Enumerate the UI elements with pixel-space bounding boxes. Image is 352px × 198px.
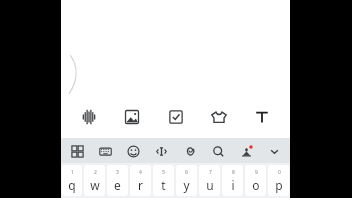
button[interactable]: Emoji (121, 139, 145, 163)
staticText: w (90, 177, 100, 193)
button[interactable]: 4 (130, 165, 151, 196)
staticText: 8 (232, 169, 235, 176)
button[interactable]: 1 (62, 165, 82, 196)
staticText: 7 (209, 169, 212, 176)
staticText: e (114, 177, 121, 193)
staticText: 0 (278, 169, 281, 176)
button[interactable]: Keyboard layout (93, 139, 117, 163)
button[interactable]: Voice message (74, 102, 104, 132)
button[interactable]: 3 (107, 165, 128, 196)
staticText: q (68, 177, 76, 193)
button[interactable]: Sticker (204, 102, 234, 132)
button[interactable]: Collapse (262, 139, 286, 163)
staticText: u (206, 177, 214, 193)
button[interactable]: 6 (176, 165, 197, 196)
button[interactable]: 9 (245, 165, 266, 196)
staticText: y (183, 177, 190, 193)
staticText: i (231, 177, 235, 193)
staticText: o (252, 177, 260, 193)
staticText: r (138, 177, 143, 193)
button[interactable]: 7 (199, 165, 220, 196)
staticText: p (275, 177, 283, 193)
staticText: 9 (255, 169, 258, 176)
button[interactable]: Apps (65, 139, 89, 163)
button[interactable]: 5 (153, 165, 174, 196)
button[interactable]: 8 (222, 165, 243, 196)
button[interactable]: Search (206, 139, 230, 163)
button[interactable]: Insert image (117, 102, 147, 132)
button[interactable]: Clipboard (178, 139, 202, 163)
button[interactable]: Settings (234, 139, 258, 163)
button[interactable]: Checklist (161, 102, 191, 132)
staticText: 3 (116, 169, 119, 176)
staticText: 5 (162, 169, 165, 176)
button[interactable]: 2 (84, 165, 105, 196)
staticText: 1 (71, 169, 74, 176)
staticText: 2 (94, 169, 97, 176)
staticText: 6 (185, 169, 188, 176)
button[interactable]: Text (247, 102, 277, 132)
button[interactable]: 0 (268, 165, 289, 196)
staticText: t (161, 177, 166, 193)
staticText: 4 (139, 169, 142, 176)
button[interactable]: Text editing (149, 139, 173, 163)
